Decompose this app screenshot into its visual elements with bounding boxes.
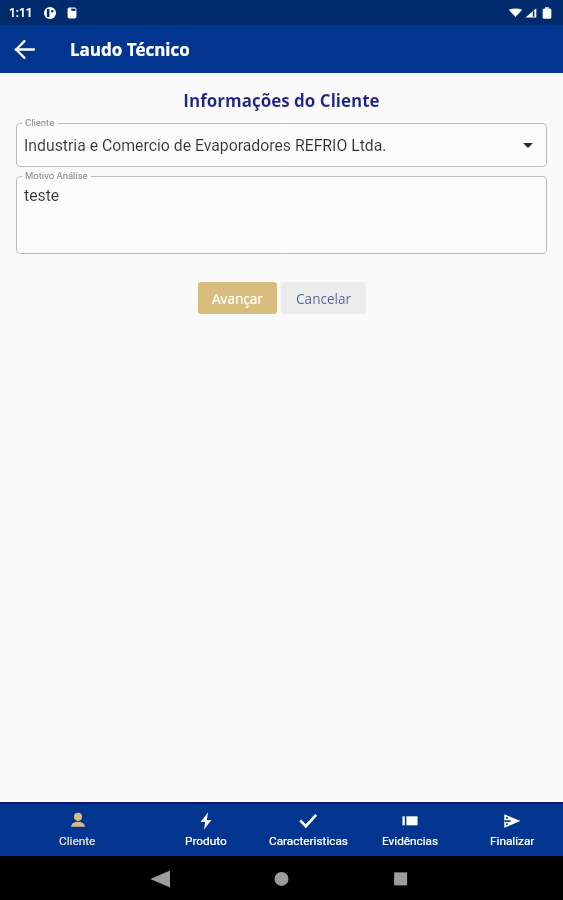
button[interactable]: Expand dropdown — [509, 126, 547, 164]
staticText: Produto — [185, 834, 227, 848]
button[interactable]: Produto — [155, 804, 257, 856]
button[interactable]: Finalizar — [461, 804, 563, 856]
staticText: Laudo Técnico — [70, 38, 190, 61]
staticText: Evidências — [382, 834, 439, 848]
staticText: Industria e Comercio de Evaporadores REF… — [24, 136, 387, 155]
staticText: Caracteristicas — [269, 834, 348, 848]
staticText: 1:11 — [9, 6, 33, 20]
staticText: Motivo Análise — [25, 170, 88, 181]
staticText: teste — [24, 186, 60, 205]
staticText: Informações do Cliente — [0, 89, 563, 112]
staticText: Cliente — [25, 117, 55, 128]
button[interactable]: Avançar — [198, 282, 277, 314]
button[interactable]: Evidências — [359, 804, 461, 856]
staticText: Avançar — [212, 289, 263, 308]
staticText: Finalizar — [490, 834, 535, 848]
button[interactable]: Industria e Comercio de Evaporadores REF… — [16, 123, 547, 167]
button[interactable]: teste — [16, 176, 547, 254]
staticText: Cliente — [59, 834, 96, 848]
button[interactable]: Caracteristicas — [257, 804, 359, 856]
button[interactable]: Cancelar — [281, 282, 366, 314]
button[interactable]: Back — [0, 25, 48, 73]
button[interactable]: Cliente — [0, 804, 155, 856]
staticText: Cancelar — [296, 289, 352, 308]
